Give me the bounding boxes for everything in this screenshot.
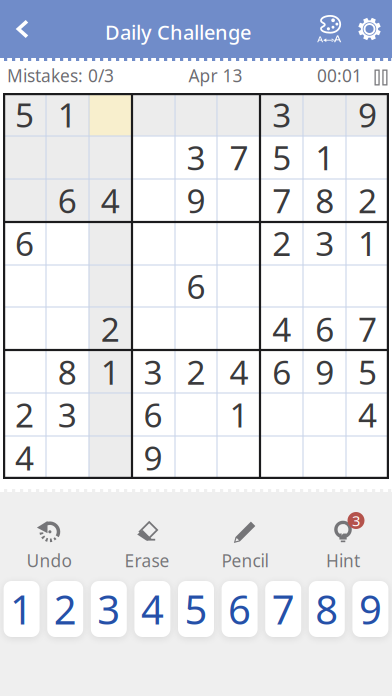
button[interactable]: 5	[178, 581, 214, 637]
staticText: 1	[101, 350, 120, 394]
staticText: 1	[315, 135, 334, 179]
staticText: 2	[358, 178, 377, 222]
staticText: 3	[272, 92, 291, 137]
staticText: 6	[58, 178, 77, 222]
staticText: 6	[144, 392, 163, 437]
staticText: 4	[141, 582, 164, 635]
staticText: 3	[186, 135, 205, 179]
staticText: 4	[358, 392, 377, 437]
button[interactable]: 7	[265, 581, 301, 637]
staticText: 00:01	[317, 64, 362, 87]
staticText: 8	[58, 350, 77, 394]
staticText: Apr 13	[188, 64, 242, 87]
button[interactable]: 8	[309, 581, 345, 637]
staticText: 7	[272, 178, 291, 222]
button[interactable]: 3	[294, 520, 392, 568]
staticText: 4	[272, 307, 291, 351]
staticText: 7	[272, 582, 295, 635]
staticText: 5	[15, 92, 34, 137]
staticText: 3	[315, 221, 334, 265]
staticText: 6	[228, 582, 251, 635]
staticText: 2	[186, 350, 205, 394]
staticText: 6	[186, 264, 205, 308]
staticText: Erase	[124, 549, 169, 572]
button[interactable]: Undo	[0, 520, 98, 568]
staticText: 8	[315, 178, 334, 222]
button[interactable]: Theme	[312, 0, 347, 58]
staticText: 2	[101, 307, 120, 351]
staticText: 2	[54, 582, 77, 635]
staticText: 2	[272, 221, 291, 265]
button[interactable]: Erase	[98, 520, 196, 568]
staticText: 9	[315, 350, 334, 394]
staticText: 6	[315, 307, 334, 351]
button[interactable]: Back	[0, 0, 44, 58]
staticText: 5	[272, 135, 291, 179]
staticText: 7	[229, 135, 248, 179]
button[interactable]: 2	[47, 581, 83, 637]
staticText: Daily Challenge	[105, 19, 251, 45]
staticText: 4	[229, 350, 248, 394]
staticText: Mistakes: 0/3	[7, 64, 114, 87]
staticText: 1	[358, 221, 377, 265]
staticText: 3	[58, 392, 77, 437]
staticText: 3	[352, 511, 360, 530]
staticText: 4	[15, 435, 34, 480]
staticText: Undo	[26, 549, 71, 572]
staticText: Hint	[326, 549, 360, 572]
staticText: 9	[358, 92, 377, 137]
staticText: 9	[359, 582, 382, 635]
staticText: 1	[10, 582, 33, 635]
button[interactable]: Settings	[347, 0, 392, 58]
staticText: 6	[272, 350, 291, 394]
button[interactable]: 6	[222, 581, 258, 637]
staticText: 1	[58, 92, 77, 137]
button[interactable]: Pause	[362, 58, 392, 93]
staticText: 9	[144, 435, 163, 480]
button[interactable]: 4	[134, 581, 170, 637]
staticText: 7	[358, 307, 377, 351]
staticText: 9	[186, 178, 205, 222]
staticText: 3	[97, 582, 120, 635]
staticText: 1	[229, 392, 248, 437]
staticText: 3	[144, 350, 163, 394]
button[interactable]: 3	[91, 581, 127, 637]
button[interactable]: 1	[4, 581, 40, 637]
staticText: 5	[184, 582, 207, 635]
staticText: 5	[358, 350, 377, 394]
staticText: Pencil	[221, 549, 268, 572]
staticText: 8	[315, 582, 338, 635]
button[interactable]: 9	[352, 581, 388, 637]
staticText: 6	[15, 221, 34, 265]
button[interactable]: Pencil	[196, 520, 294, 568]
staticText: 4	[101, 178, 120, 222]
staticText: 2	[15, 392, 34, 437]
